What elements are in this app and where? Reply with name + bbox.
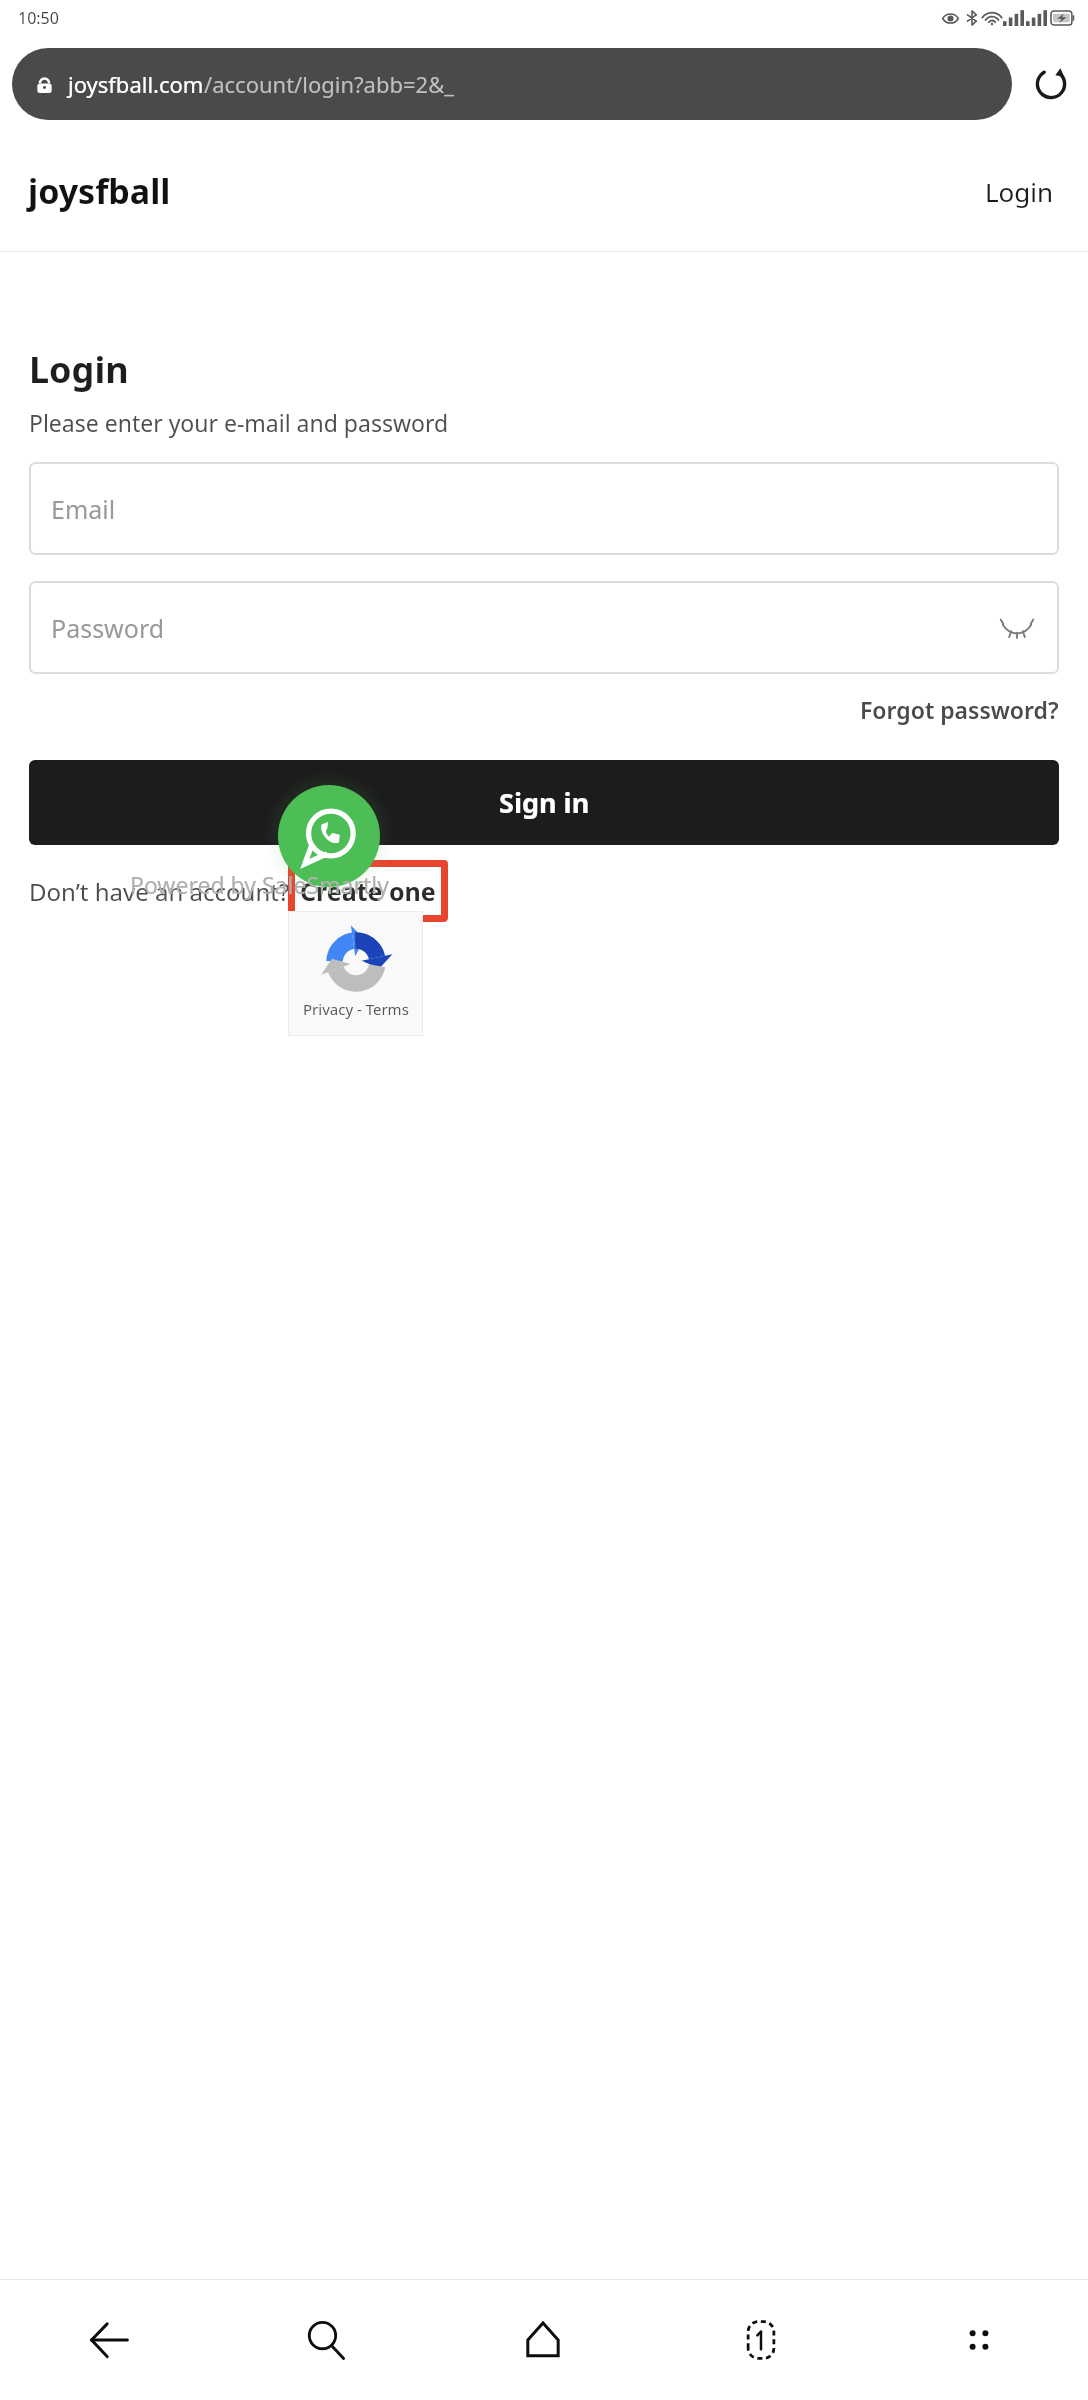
button[interactable]: Create one [288,860,448,922]
staticText: 10:50 [18,7,59,29]
button[interactable]: Password [29,581,1059,674]
staticText: Don’t have an account? [29,875,290,908]
button[interactable]: Forgot password? [860,688,1059,731]
staticText: Please enter your e-mail and password [29,407,449,438]
button[interactable]: Back [0,2280,217,2400]
staticText: joysfball [28,168,171,214]
button[interactable]: Home [434,2280,652,2400]
button[interactable]: Tabs [652,2280,870,2400]
staticText: Create one [300,874,436,908]
staticText: Email [51,492,116,526]
staticText: Password [51,611,165,645]
button[interactable]: Login [979,166,1060,217]
button[interactable]: joysfball.com [12,48,1012,120]
staticText: /account/login?abb=2&_ [204,69,455,99]
staticText: Privacy - Terms [303,999,409,1019]
button[interactable]: Show password [995,606,1039,650]
staticText: joysfball.com [68,69,204,99]
button[interactable]: More options [870,2280,1088,2400]
staticText: Sign in [499,784,590,821]
button[interactable]: Email [29,462,1059,555]
button[interactable]: Sign in [29,760,1059,845]
staticText: Login [985,174,1054,209]
button[interactable]: Reload [1026,59,1076,109]
staticText: Login [29,345,129,394]
button[interactable]: Search [217,2280,434,2400]
staticText: Powered by SaleSmartly [130,869,389,900]
button[interactable]: reCAPTCHA privacy and terms [288,911,423,1036]
staticText: Forgot password? [860,694,1059,725]
button[interactable]: Chat on WhatsApp [278,785,380,887]
